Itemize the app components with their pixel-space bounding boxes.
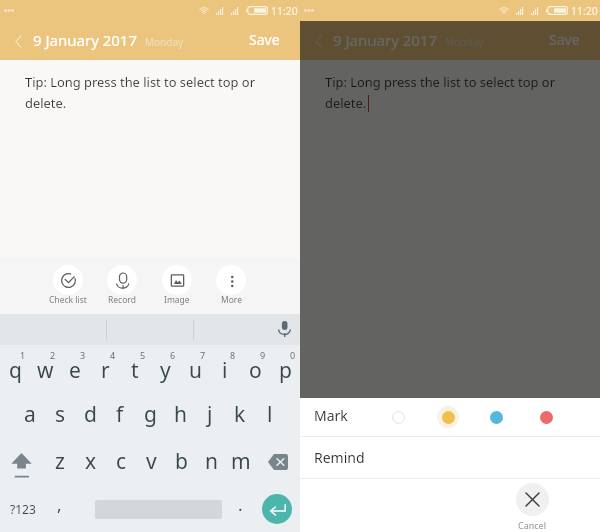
- staticText: o: [249, 356, 262, 385]
- staticText: j: [207, 400, 213, 429]
- button[interactable]: h: [165, 392, 195, 438]
- button[interactable]: Image: [150, 258, 204, 314]
- staticText: u: [189, 356, 202, 385]
- button[interactable]: Backspace: [256, 438, 300, 485]
- staticText: 9: [260, 349, 266, 361]
- staticText: z: [55, 447, 65, 476]
- staticText: a: [24, 400, 36, 429]
- button[interactable]: 7: [180, 345, 210, 392]
- staticText: Save: [249, 30, 280, 49]
- button[interactable]: s: [45, 392, 75, 438]
- button[interactable]: Mark colour: [534, 405, 558, 429]
- staticText: x: [85, 447, 97, 476]
- button[interactable]: 8: [210, 345, 240, 392]
- button[interactable]: 3: [60, 345, 90, 392]
- button[interactable]: d: [75, 392, 105, 438]
- button[interactable]: Enter: [262, 494, 292, 524]
- staticText: delete.: [325, 94, 367, 112]
- button[interactable]: More: [204, 258, 258, 314]
- staticText: .: [238, 493, 243, 516]
- staticText: 9 January 2017: [33, 30, 138, 50]
- button[interactable]: Mark colour: [436, 405, 460, 429]
- staticText: f: [116, 400, 124, 429]
- button[interactable]: l: [255, 392, 285, 438]
- staticText: 11:20: [571, 4, 598, 18]
- staticText: Remind: [314, 448, 365, 467]
- staticText: t: [131, 356, 139, 385]
- button[interactable]: ?123: [0, 485, 46, 532]
- staticText: 0: [290, 349, 296, 361]
- button[interactable]: c: [106, 438, 136, 485]
- button[interactable]: Mark colour: [386, 405, 410, 429]
- staticText: Mark: [314, 406, 348, 425]
- staticText: r: [101, 356, 110, 385]
- staticText: 11:20: [271, 4, 298, 18]
- staticText: q: [9, 356, 22, 385]
- staticText: p: [279, 356, 292, 385]
- button[interactable]: Save: [235, 23, 300, 58]
- staticText: v: [146, 447, 157, 476]
- button[interactable]: z: [44, 438, 75, 485]
- button[interactable]: j: [195, 392, 225, 438]
- staticText: Monday: [145, 35, 184, 49]
- button[interactable]: Voice input: [272, 314, 297, 339]
- button[interactable]: 5: [120, 345, 150, 392]
- staticText: 5: [140, 349, 146, 361]
- button[interactable]: f: [105, 392, 135, 438]
- staticText: Tip: Long press the list to select top o…: [325, 73, 555, 91]
- staticText: 1: [20, 349, 26, 361]
- staticText: 6: [170, 349, 176, 361]
- staticText: Save: [549, 30, 580, 49]
- button[interactable]: 4: [90, 345, 120, 392]
- button[interactable]: b: [166, 438, 196, 485]
- staticText: Record: [108, 294, 136, 306]
- staticText: b: [175, 447, 188, 476]
- button[interactable]: Record: [95, 258, 149, 314]
- staticText: w: [37, 356, 54, 385]
- button[interactable]: a: [15, 392, 45, 438]
- button[interactable]: Back: [306, 29, 330, 53]
- button[interactable]: m: [226, 438, 256, 485]
- staticText: d: [84, 400, 97, 429]
- button[interactable]: Remind: [300, 437, 600, 478]
- staticText: l: [267, 400, 273, 429]
- staticText: 4: [110, 349, 116, 361]
- button[interactable]: 6: [150, 345, 180, 392]
- button[interactable]: Shift: [0, 438, 44, 485]
- staticText: 8: [230, 349, 236, 361]
- staticText: y: [160, 356, 171, 385]
- staticText: c: [116, 447, 127, 476]
- staticText: Check list: [49, 294, 87, 306]
- button[interactable]: g: [135, 392, 165, 438]
- button[interactable]: x: [75, 438, 106, 485]
- staticText: k: [234, 400, 246, 429]
- staticText: Monday: [445, 35, 484, 49]
- staticText: More: [221, 294, 242, 306]
- staticText: e: [69, 356, 81, 385]
- button[interactable]: .: [227, 485, 253, 532]
- button[interactable]: 1: [0, 345, 30, 392]
- button[interactable]: Cancel: [516, 483, 549, 531]
- staticText: ,: [57, 493, 62, 516]
- button[interactable]: Mark: [300, 398, 600, 436]
- button[interactable]: Back: [6, 29, 30, 53]
- button[interactable]: 2: [30, 345, 60, 392]
- button[interactable]: ,: [46, 485, 73, 532]
- staticText: ?123: [10, 501, 36, 517]
- staticText: m: [231, 447, 251, 476]
- button[interactable]: Save: [535, 23, 600, 58]
- button[interactable]: [73, 485, 249, 532]
- button[interactable]: Mark colour: [484, 405, 508, 429]
- button[interactable]: v: [136, 438, 166, 485]
- staticText: Tip: Long press the list to select top o…: [25, 73, 255, 91]
- button[interactable]: 0: [270, 345, 300, 392]
- button[interactable]: Check list: [41, 258, 95, 314]
- staticText: h: [174, 400, 187, 429]
- staticText: 3: [80, 349, 86, 361]
- staticText: 7: [200, 349, 206, 361]
- button[interactable]: 9: [240, 345, 270, 392]
- button[interactable]: n: [196, 438, 226, 485]
- staticText: Cancel: [518, 519, 547, 531]
- button[interactable]: k: [225, 392, 255, 438]
- staticText: i: [222, 356, 228, 385]
